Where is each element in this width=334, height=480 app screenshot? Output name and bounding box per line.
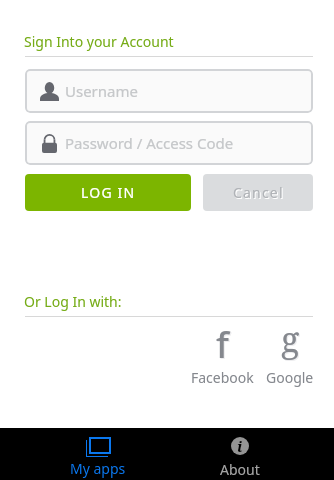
staticText: LOG IN [81, 183, 136, 202]
button[interactable]: g [258, 321, 322, 379]
staticText: g [281, 316, 300, 362]
staticText: Password / Access Code [65, 133, 234, 153]
other: About [231, 437, 249, 455]
button[interactable]: Password / Access Code [25, 121, 313, 165]
staticText: g [282, 317, 301, 363]
staticText: i [237, 436, 243, 454]
button[interactable]: My apps [68, 428, 128, 480]
button[interactable]: Cancel [203, 174, 313, 211]
button[interactable]: LOG IN [25, 174, 191, 211]
staticText: Facebook [191, 368, 254, 387]
staticText: Or Log In with: [24, 292, 122, 311]
staticText: f [217, 321, 230, 370]
staticText: About [220, 460, 260, 479]
staticText: Cancel [233, 183, 284, 202]
staticText: f [216, 320, 229, 369]
button[interactable]: f [190, 323, 254, 381]
staticText: Cancel [234, 184, 285, 203]
staticText: Username [65, 81, 138, 101]
button[interactable]: About [210, 428, 270, 480]
staticText: Sign Into your Account [24, 32, 174, 51]
button[interactable]: Username [25, 69, 313, 113]
other: My apps [86, 437, 111, 457]
staticText: Google [266, 368, 314, 387]
staticText: My apps [70, 459, 126, 478]
